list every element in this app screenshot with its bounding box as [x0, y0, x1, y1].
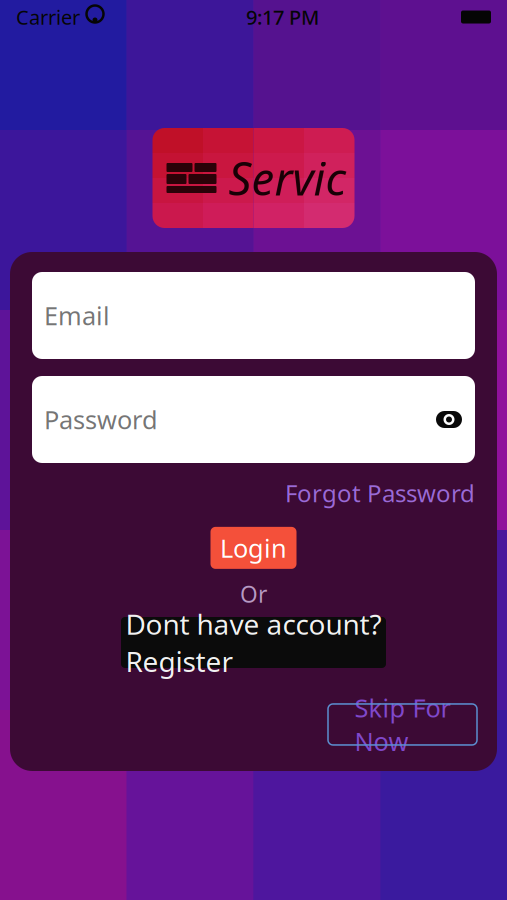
- button[interactable]: Email: [32, 272, 475, 359]
- button[interactable]: Password: [32, 376, 475, 463]
- staticText: Email: [44, 299, 110, 332]
- staticText: Skip For Now: [354, 691, 450, 758]
- staticText: Carrier: [16, 4, 80, 30]
- staticText: Servic: [228, 148, 346, 208]
- button[interactable]: Login: [210, 527, 296, 569]
- staticText: Dont have account? Register: [125, 605, 381, 680]
- staticText: Forgot Password: [285, 477, 475, 509]
- button[interactable]: Skip For Now: [328, 704, 477, 745]
- staticText: 9:17 PM: [246, 4, 319, 30]
- button[interactable]: Forgot Password: [285, 471, 475, 515]
- staticText: Password: [44, 403, 158, 436]
- staticText: Or: [240, 579, 267, 609]
- button[interactable]: Dont have account? Register: [121, 617, 386, 668]
- staticText: Login: [220, 531, 287, 565]
